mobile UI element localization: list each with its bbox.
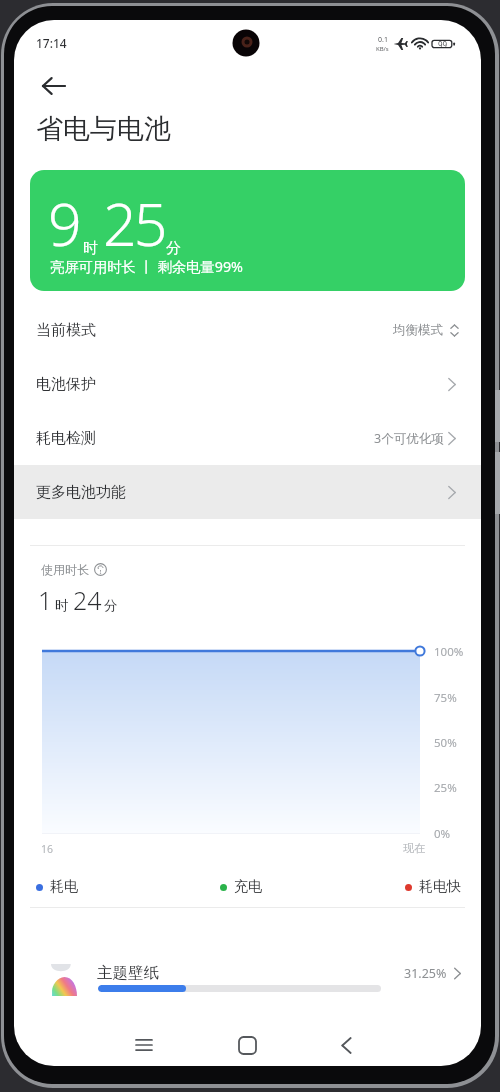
- staticText: 24: [73, 583, 102, 617]
- staticText: 75%: [434, 690, 457, 706]
- staticText: 现在: [403, 841, 425, 855]
- staticText: 99: [438, 39, 448, 50]
- button[interactable]: 更多电池功能: [14, 465, 481, 519]
- staticText: 使用时长: [41, 562, 89, 577]
- staticText: 电池保护: [36, 375, 96, 394]
- staticText: 16: [41, 842, 54, 856]
- staticText: 9: [48, 183, 82, 263]
- staticText: 亮屏可用时长 丨 剩余电量99%: [50, 257, 243, 277]
- staticText: 0%: [434, 826, 451, 842]
- staticText: 50%: [434, 735, 457, 751]
- button[interactable]: Recent apps: [116, 1022, 172, 1066]
- staticText: 时: [83, 239, 98, 258]
- staticText: 25%: [434, 780, 457, 796]
- staticText: 分: [166, 239, 181, 258]
- staticText: 耗电: [50, 878, 78, 896]
- staticText: 更多电池功能: [36, 483, 126, 502]
- staticText: 耗电快: [419, 878, 461, 896]
- staticText: 100%: [434, 644, 464, 660]
- staticText: 主题壁纸: [97, 963, 159, 983]
- staticText: 均衡模式: [393, 322, 443, 338]
- staticText: 17:14: [36, 35, 67, 51]
- staticText: 31.25%: [404, 965, 447, 982]
- button[interactable]: 电池保护: [14, 357, 481, 411]
- button[interactable]: 耗电检测: [14, 411, 481, 465]
- button[interactable]: Back: [318, 1022, 374, 1066]
- staticText: 耗电检测: [36, 429, 96, 448]
- staticText: 3个可优化项: [374, 430, 444, 447]
- button[interactable]: 9: [30, 170, 465, 291]
- button[interactable]: 当前模式: [14, 303, 481, 357]
- staticText: 1: [38, 583, 53, 617]
- button[interactable]: 主题壁纸: [14, 930, 481, 1005]
- staticText: 当前模式: [36, 321, 96, 340]
- staticText: 25: [103, 183, 165, 263]
- staticText: 时: [55, 597, 69, 614]
- button[interactable]: Home: [219, 1022, 275, 1066]
- staticText: 充电: [234, 878, 262, 896]
- staticText: 省电与电池: [36, 112, 171, 146]
- staticText: 分: [104, 597, 118, 614]
- button[interactable]: Back: [32, 64, 76, 108]
- staticText: 0.1: [378, 35, 388, 45]
- staticText: KB/s: [376, 45, 389, 53]
